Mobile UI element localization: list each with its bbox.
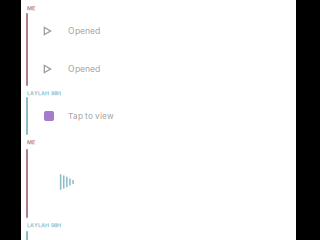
staticText: LAYLAH 98H	[27, 222, 61, 228]
button[interactable]: Tap to view	[21, 101, 296, 131]
button[interactable]: Opened	[21, 13, 296, 49]
staticText: ME	[27, 5, 35, 11]
button[interactable]: Opened	[21, 51, 296, 87]
button[interactable]: Play audio note	[21, 152, 296, 212]
staticText: Tap to view	[68, 111, 114, 121]
staticText: LAYLAH 98H	[27, 90, 61, 96]
staticText: Opened	[68, 64, 100, 74]
staticText: ME	[27, 139, 35, 145]
staticText: Opened	[68, 26, 100, 36]
